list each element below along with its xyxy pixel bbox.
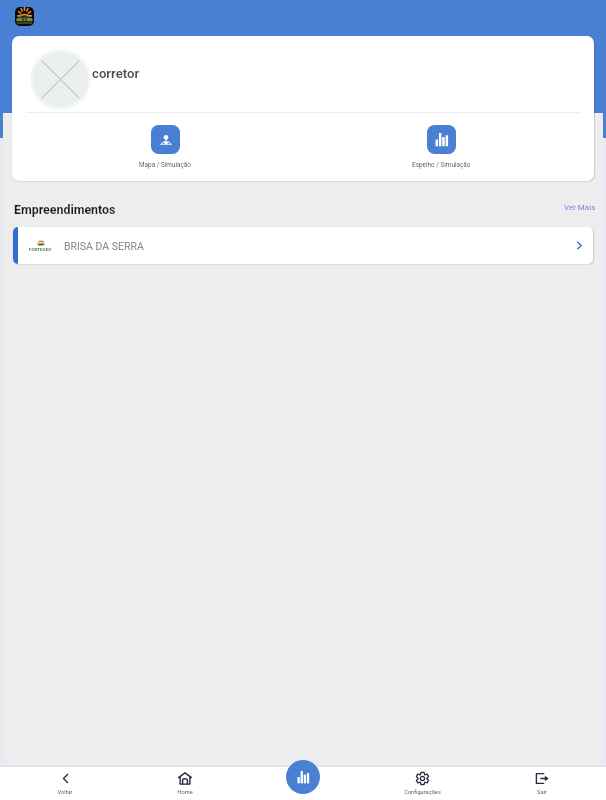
button[interactable]: Voltar xyxy=(5,767,125,800)
button[interactable]: FORTEOESTE xyxy=(13,227,593,264)
staticText: Home xyxy=(177,789,193,796)
staticText: Sair xyxy=(537,789,547,796)
button[interactable]: Sair xyxy=(482,767,601,800)
button[interactable]: Mapa / Simulação xyxy=(27,113,303,181)
button[interactable]: Espelho / Simulação xyxy=(303,113,579,181)
button[interactable]: Logo do aplicativo xyxy=(15,7,34,26)
staticText: Voltar xyxy=(57,789,73,796)
staticText: FORTEOESTE xyxy=(29,247,52,252)
button[interactable]: Relatórios xyxy=(286,760,320,794)
button[interactable]: Ver Mais xyxy=(564,203,596,212)
staticText: Mapa / Simulação xyxy=(139,161,191,169)
staticText: Configurações xyxy=(404,789,441,796)
button[interactable]: Home xyxy=(125,767,244,800)
staticText: Espelho / Simulação xyxy=(412,161,471,169)
staticText: corretor xyxy=(92,66,140,81)
button[interactable]: Configurações xyxy=(363,767,482,800)
staticText: Empreendimentos xyxy=(14,202,116,217)
staticText: Ver Mais xyxy=(564,203,596,212)
staticText: BRISA DA SERRA xyxy=(64,240,144,252)
